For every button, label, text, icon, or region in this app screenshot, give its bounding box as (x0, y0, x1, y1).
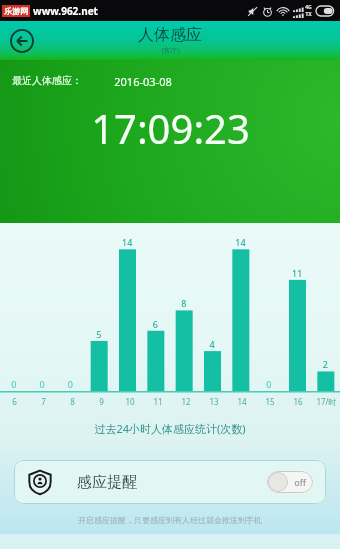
staticText: 最近人体感应： (12, 74, 82, 87)
staticText: 10 (125, 396, 135, 407)
staticText: 乐游网 (4, 6, 28, 16)
staticText: 11 (153, 396, 163, 407)
staticText: 16 (293, 396, 303, 407)
staticText: 开启感应提醒，只要感应到有人经过就会推送到手机 (78, 515, 262, 525)
staticText: 12 (181, 396, 191, 407)
staticText: 2016-03-08 (114, 74, 172, 89)
staticText: 感应提醒 (77, 473, 137, 492)
staticText: 4G (305, 4, 312, 11)
staticText: off (294, 476, 306, 488)
staticText: 17:09:23 (91, 101, 250, 155)
staticText: TX (305, 11, 312, 18)
staticText: 过去24小时人体感应统计(次数) (94, 421, 246, 436)
button[interactable]: 感应提醒 switch, off (267, 471, 313, 493)
staticText: 7 (41, 396, 46, 407)
staticText: 15 (265, 396, 275, 407)
staticText: www.962.net (33, 4, 98, 18)
button[interactable]: 感应提醒 (14, 460, 326, 504)
staticText: 6 (12, 396, 17, 407)
staticText: 人体感应 (138, 25, 202, 45)
staticText: 13 (209, 396, 219, 407)
staticText: (客厅) (161, 46, 180, 56)
staticText: 17/时 (316, 396, 337, 407)
staticText: 8 (70, 396, 75, 407)
staticText: 14 (237, 396, 247, 407)
button[interactable]: Back (8, 27, 36, 55)
staticText: 9 (99, 396, 104, 407)
